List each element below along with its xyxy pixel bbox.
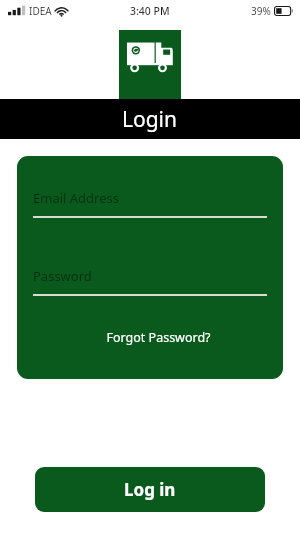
button[interactable]: Email Address — [33, 189, 267, 218]
button[interactable]: Password — [33, 267, 267, 296]
button[interactable]: Forgot Password? — [100, 326, 217, 349]
other: Delivery truck logo — [126, 41, 174, 72]
button[interactable]: Log in — [35, 467, 265, 512]
staticText: Password — [33, 267, 92, 285]
staticText: Email Address — [33, 189, 119, 207]
staticText: 3:40 PM — [130, 4, 170, 18]
staticText: Forgot Password? — [106, 329, 211, 346]
staticText: Login — [122, 105, 178, 134]
staticText: 39% — [251, 4, 271, 18]
staticText: IDEA — [29, 4, 52, 18]
staticText: Log in — [124, 478, 176, 501]
